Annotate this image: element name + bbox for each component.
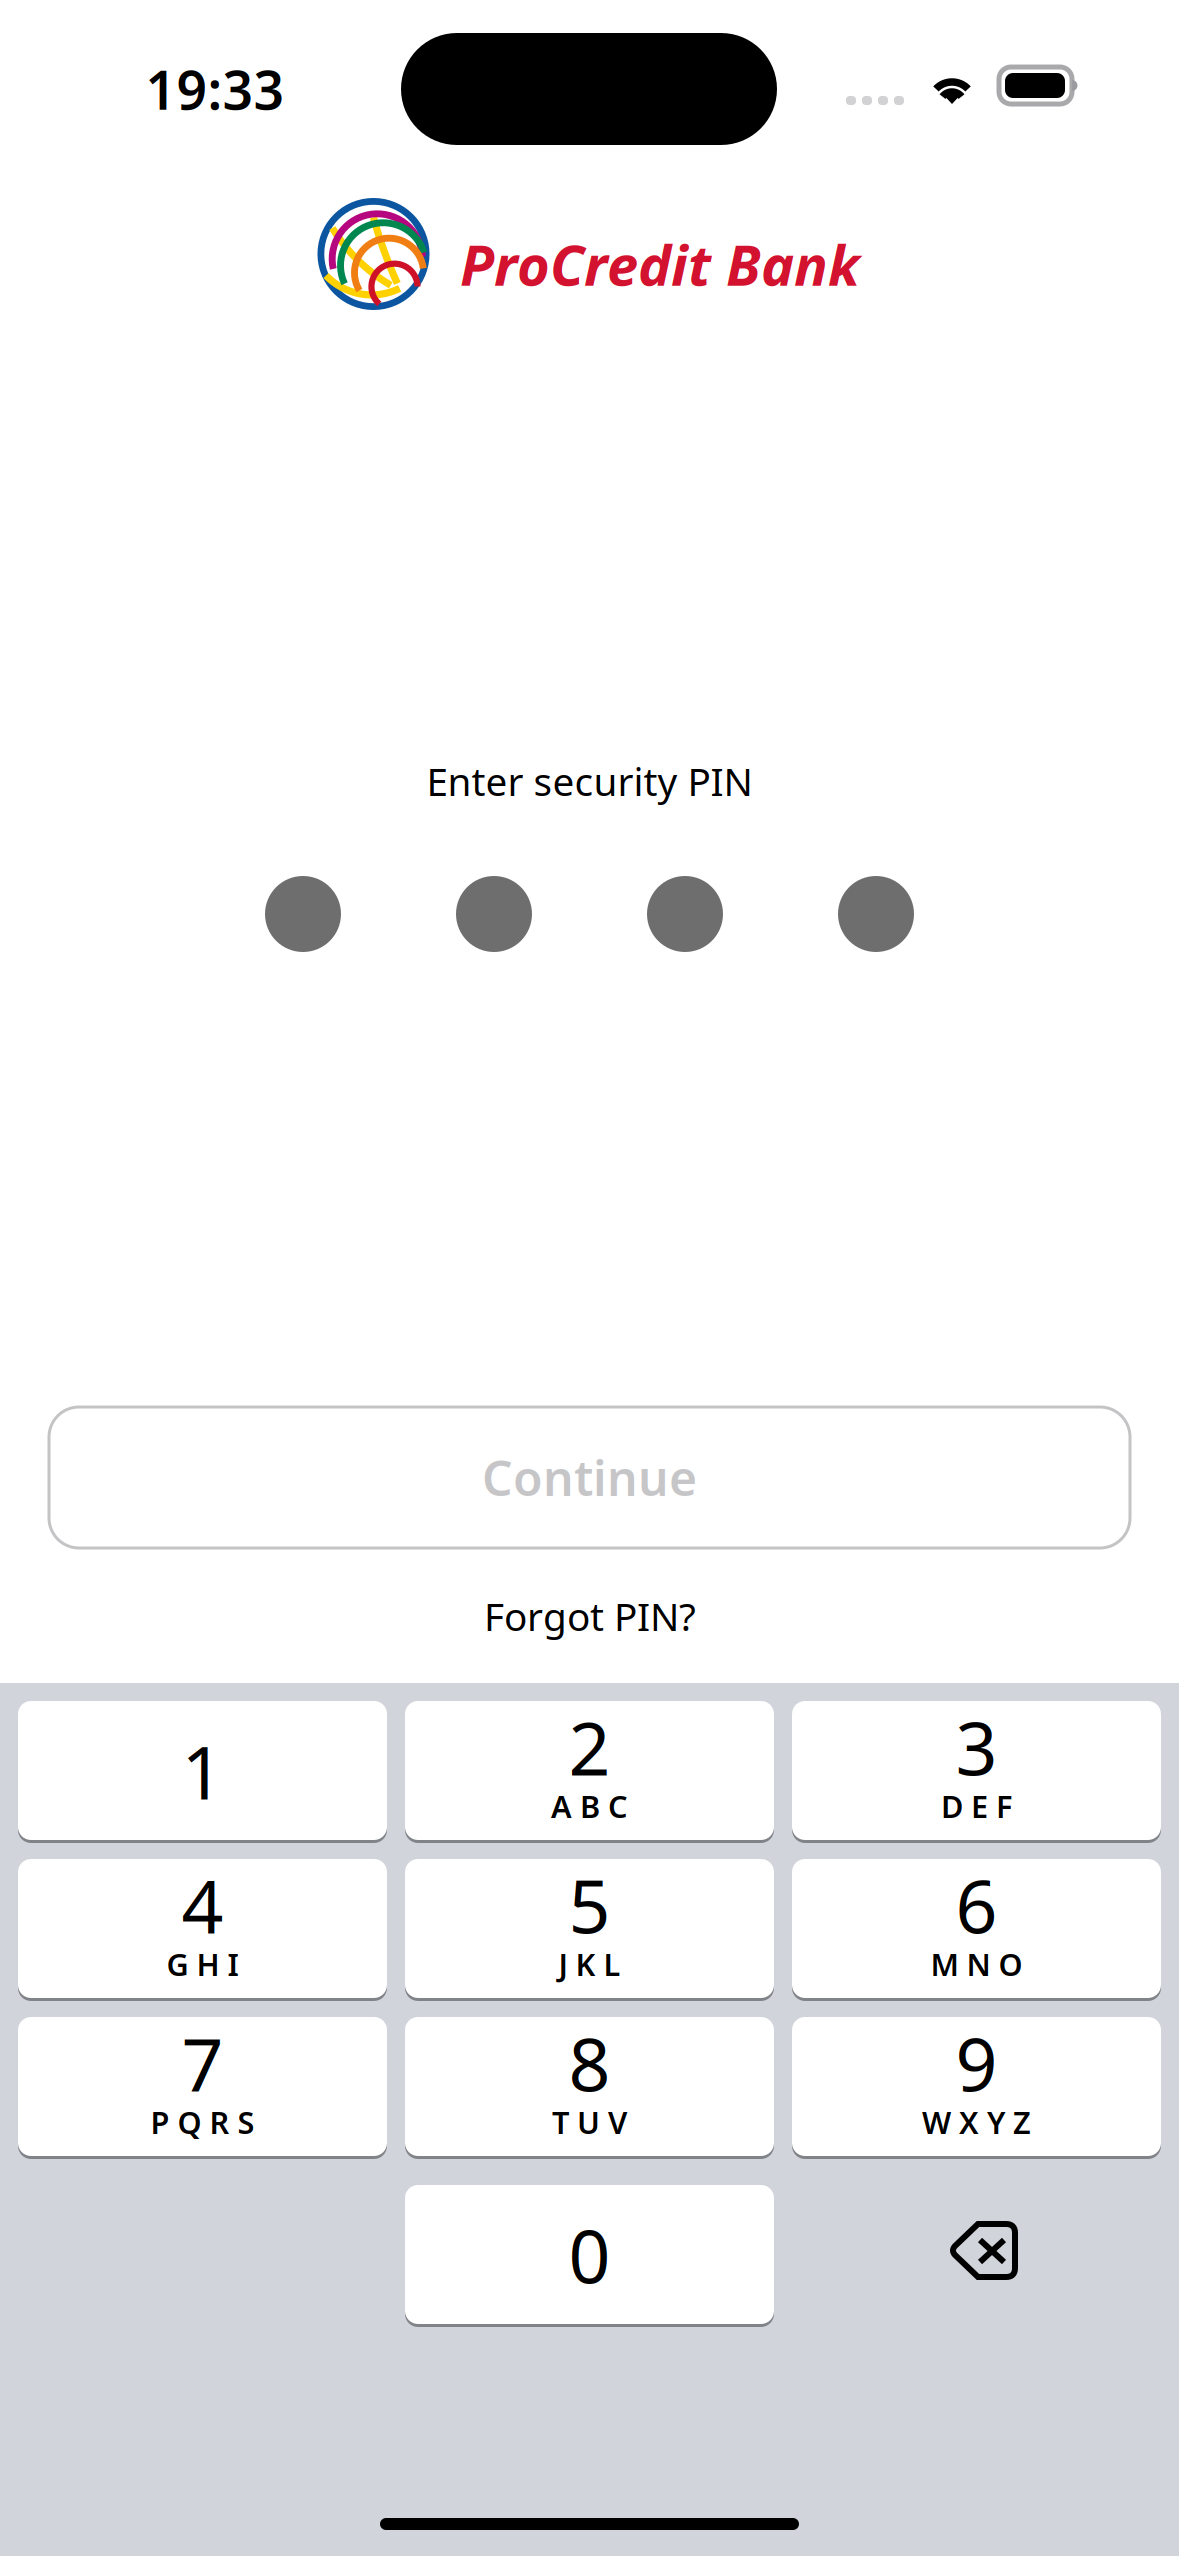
staticText: 3 xyxy=(955,1698,997,1796)
button[interactable]: 6 xyxy=(792,1859,1161,2001)
button[interactable]: 9 xyxy=(792,2017,1161,2159)
button[interactable]: 0 xyxy=(405,2185,774,2327)
staticText: 8 xyxy=(568,2014,610,2112)
staticText: 9 xyxy=(955,2014,997,2112)
button[interactable]: 8 xyxy=(405,2017,774,2159)
button[interactable]: 7 xyxy=(18,2017,387,2159)
staticText: 5 xyxy=(568,1856,610,1954)
button[interactable]: Forgot PIN? xyxy=(460,1588,720,1644)
staticText: 6 xyxy=(955,1856,997,1954)
staticText: D E F xyxy=(941,1786,1012,1826)
staticText: J K L xyxy=(558,1944,620,1984)
button[interactable]: 1 xyxy=(18,1701,387,1843)
staticText: M N O xyxy=(930,1944,1022,1984)
button[interactable]: 2 xyxy=(405,1701,774,1843)
staticText: 19:33 xyxy=(145,54,284,124)
staticText: 1 xyxy=(181,1722,223,1820)
staticText: 0 xyxy=(568,2206,610,2304)
staticText: ProCredit Bank xyxy=(460,227,860,301)
button[interactable]: 5 xyxy=(405,1859,774,2001)
staticText: 7 xyxy=(181,2014,223,2112)
staticText: T U V xyxy=(552,2102,627,2142)
staticText: A B C xyxy=(551,1786,628,1826)
button[interactable]: 4 xyxy=(18,1859,387,2001)
button[interactable]: 3 xyxy=(792,1701,1161,1843)
staticText: 2 xyxy=(568,1698,610,1796)
staticText: Continue xyxy=(482,1446,697,1509)
staticText: P Q R S xyxy=(150,2102,254,2142)
staticText: Forgot PIN? xyxy=(484,1590,696,1642)
staticText: Enter security PIN xyxy=(426,755,752,807)
button[interactable]: Delete xyxy=(792,2185,1161,2327)
staticText: 4 xyxy=(181,1856,223,1954)
staticText: G H I xyxy=(166,1944,238,1984)
button[interactable]: Continue xyxy=(49,1407,1130,1548)
staticText: W X Y Z xyxy=(922,2102,1031,2142)
